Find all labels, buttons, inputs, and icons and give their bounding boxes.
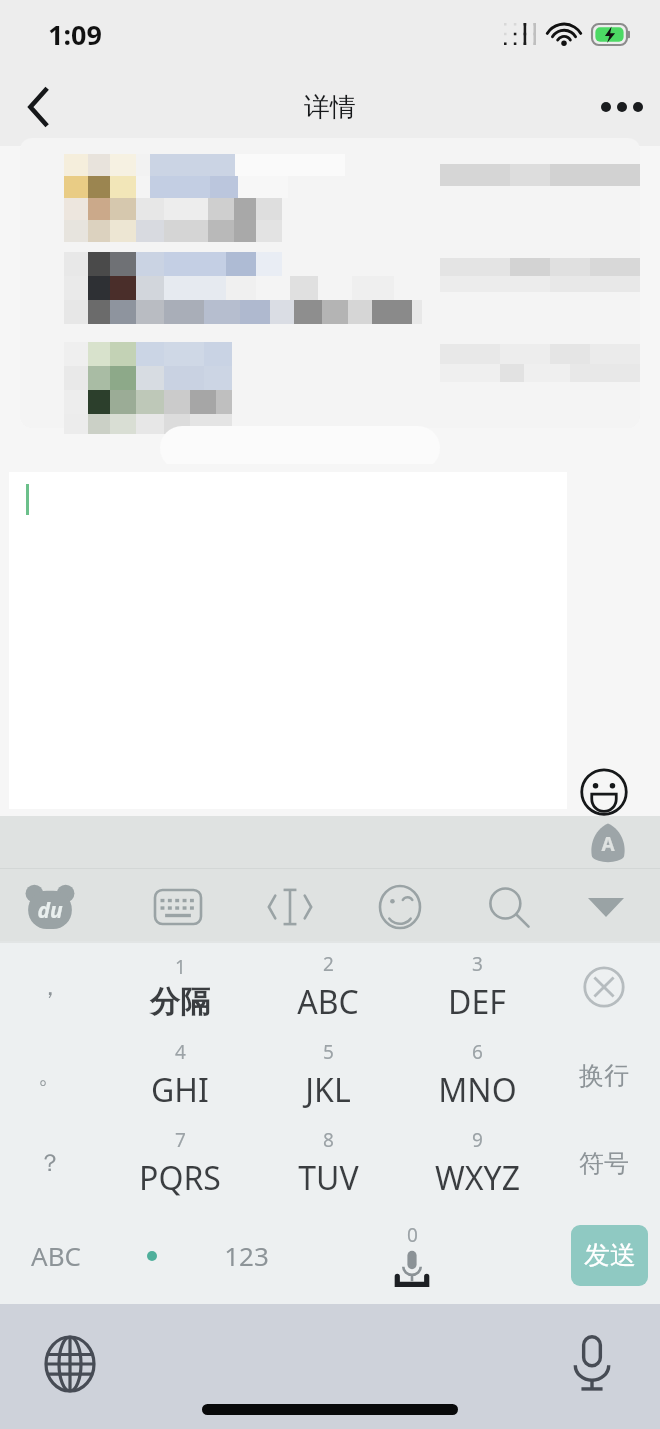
- staticText: JKL: [305, 1068, 351, 1112]
- button[interactable]: Move cursor: [262, 883, 318, 931]
- staticText: 2: [323, 951, 334, 977]
- staticText: 4: [175, 1039, 186, 1065]
- button[interactable]: Emoji: [578, 766, 630, 818]
- button[interactable]: Voice input: [352, 1207, 472, 1304]
- staticText: ABC: [297, 980, 359, 1024]
- button[interactable]: Change language: [38, 1332, 102, 1396]
- staticText: 发送: [584, 1239, 636, 1272]
- button[interactable]: ，: [8, 943, 92, 1031]
- staticText: 9: [472, 1127, 483, 1153]
- button[interactable]: 7: [106, 1119, 254, 1207]
- staticText: 1:09: [48, 16, 102, 53]
- button[interactable]: Separator: [116, 1207, 188, 1304]
- staticText: MNO: [438, 1068, 517, 1112]
- button[interactable]: 2: [254, 943, 402, 1031]
- button[interactable]: 8: [254, 1119, 402, 1207]
- staticText: A: [601, 831, 615, 857]
- staticText: 5: [323, 1039, 334, 1065]
- staticText: 1: [175, 954, 186, 980]
- button[interactable]: 3: [403, 943, 551, 1031]
- staticText: 8: [323, 1127, 334, 1153]
- button[interactable]: 符号: [556, 1119, 652, 1207]
- button[interactable]: 4: [106, 1031, 254, 1119]
- button[interactable]: 9: [403, 1119, 551, 1207]
- staticText: GHI: [151, 1068, 209, 1112]
- button[interactable]: ABC: [8, 1207, 104, 1304]
- button[interactable]: Search: [480, 883, 536, 931]
- staticText: 符号: [579, 1148, 629, 1179]
- button[interactable]: 123: [198, 1207, 294, 1304]
- staticText: 123: [224, 1238, 269, 1273]
- button[interactable]: 5: [254, 1031, 402, 1119]
- button[interactable]: ？: [8, 1119, 92, 1207]
- button[interactable]: Baidu input settings: [22, 879, 78, 935]
- button[interactable]: Emoticons: [372, 883, 428, 931]
- staticText: WXYZ: [435, 1156, 520, 1200]
- staticText: ？: [38, 1148, 62, 1178]
- button[interactable]: More options: [584, 68, 660, 146]
- staticText: ABC: [31, 1238, 81, 1273]
- button[interactable]: 1: [106, 943, 254, 1031]
- staticText: 7: [175, 1127, 186, 1153]
- staticText: 分隔: [150, 983, 210, 1021]
- staticText: TUV: [298, 1156, 359, 1200]
- button[interactable]: Hide keyboard: [578, 883, 634, 931]
- button[interactable]: Switch keyboard layout: [150, 883, 206, 931]
- button[interactable]: Font size: [584, 818, 632, 866]
- button[interactable]: 6: [403, 1031, 551, 1119]
- staticText: ，: [38, 972, 62, 1002]
- staticText: PQRS: [139, 1156, 221, 1200]
- button[interactable]: 。: [8, 1031, 92, 1119]
- staticText: 3: [472, 951, 483, 977]
- staticText: 0: [407, 1222, 418, 1248]
- staticText: DEF: [448, 980, 506, 1024]
- staticText: 。: [38, 1060, 62, 1090]
- staticText: 详情: [304, 91, 356, 124]
- button[interactable]: Back: [0, 68, 76, 146]
- button[interactable]: Dictation: [560, 1332, 624, 1396]
- staticText: 6: [472, 1039, 483, 1065]
- staticText: du: [37, 896, 63, 925]
- button[interactable]: 发送: [571, 1225, 648, 1286]
- button[interactable]: [20, 138, 640, 428]
- button[interactable]: 换行: [556, 1031, 652, 1119]
- staticText: 换行: [579, 1060, 629, 1091]
- button[interactable]: Delete: [556, 943, 652, 1031]
- button[interactable]: [9, 472, 567, 809]
